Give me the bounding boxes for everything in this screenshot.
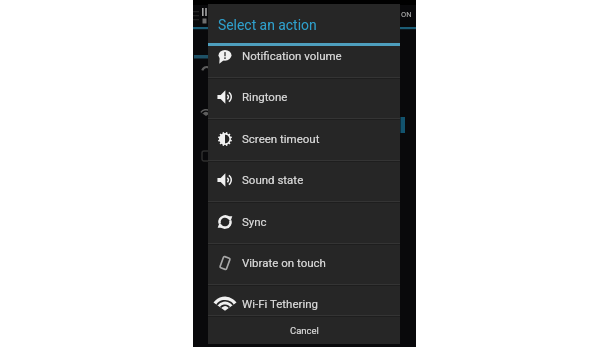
- staticText: Screen timeout: [242, 132, 320, 145]
- button[interactable]: Sound state: [208, 159, 400, 200]
- button[interactable]: Sync: [208, 201, 400, 242]
- button[interactable]: Screen timeout: [208, 118, 400, 159]
- button[interactable]: Vibrate on touch: [208, 242, 400, 283]
- button[interactable]: Notification volume: [208, 35, 400, 76]
- button[interactable]: Wi-Fi Tethering: [208, 283, 400, 324]
- staticText: ON: [401, 10, 412, 19]
- button[interactable]: Ringtone: [208, 76, 400, 117]
- staticText: Sync: [242, 215, 267, 228]
- button[interactable]: Cancel: [208, 317, 400, 344]
- staticText: Notification volume: [242, 49, 342, 62]
- staticText: Vibrate on touch: [242, 256, 326, 269]
- staticText: Ringtone: [242, 90, 288, 103]
- staticText: Cancel: [290, 325, 319, 336]
- staticText: Wi-Fi Tethering: [242, 297, 319, 310]
- staticText: Select an action: [218, 17, 317, 33]
- staticText: Sound state: [242, 173, 304, 186]
